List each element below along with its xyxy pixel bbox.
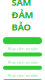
staticText: ĐẢM BẢO bbox=[11, 8, 33, 33]
button[interactable]: Xem bbox=[3, 79, 42, 80]
staticText: Mua sắm an toàn bbox=[7, 59, 37, 65]
staticText: Mua sắm an toàn bbox=[7, 46, 37, 51]
button[interactable]: Xem bbox=[3, 52, 42, 56]
button[interactable]: Mua ngay bbox=[3, 37, 42, 44]
button[interactable]: Xem bbox=[3, 66, 42, 70]
staticText: Mua sắm an toàn bbox=[7, 73, 37, 78]
staticText: MUA SẮM bbox=[11, 0, 33, 8]
